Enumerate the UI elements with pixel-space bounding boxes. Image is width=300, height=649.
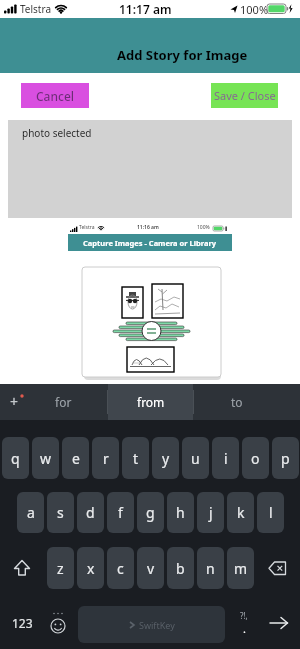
button[interactable] bbox=[2, 547, 42, 589]
button[interactable]: photo selected bbox=[8, 120, 292, 218]
button[interactable]: ?!, bbox=[230, 602, 258, 644]
button[interactable]: k bbox=[227, 492, 254, 533]
staticText: h bbox=[176, 503, 185, 522]
staticText: c bbox=[117, 559, 124, 578]
button[interactable]: 123 bbox=[0, 602, 44, 644]
staticText: from bbox=[137, 394, 165, 410]
staticText: t bbox=[133, 449, 139, 468]
staticText: y bbox=[162, 449, 170, 468]
button[interactable]: j bbox=[197, 492, 224, 533]
staticText: u bbox=[191, 449, 200, 468]
button[interactable]: Save / Close bbox=[211, 83, 278, 108]
staticText: Cancel bbox=[36, 88, 75, 104]
staticText: 11:16 am bbox=[137, 224, 159, 231]
button[interactable]: for bbox=[20, 384, 107, 420]
button[interactable]: c bbox=[107, 547, 134, 589]
staticText: f bbox=[118, 503, 123, 522]
button[interactable]: h bbox=[167, 492, 194, 533]
button[interactable]: s bbox=[47, 492, 74, 533]
staticText: for bbox=[55, 394, 72, 410]
button[interactable] bbox=[44, 602, 72, 644]
staticText: g bbox=[146, 503, 155, 522]
button[interactable]: r bbox=[92, 437, 119, 479]
button[interactable] bbox=[108, 384, 193, 420]
staticText: q bbox=[11, 449, 20, 468]
button[interactable]: f bbox=[107, 492, 134, 533]
button[interactable]: b bbox=[167, 547, 194, 589]
staticText: r bbox=[103, 449, 109, 468]
button[interactable]: SwiftKey bbox=[78, 606, 225, 643]
button[interactable] bbox=[258, 547, 298, 589]
staticText: 100% bbox=[197, 224, 210, 231]
staticText: p bbox=[281, 449, 290, 468]
staticText: photo selected bbox=[22, 126, 92, 140]
staticText: Capture Images - Camera or Library bbox=[83, 238, 217, 248]
staticText: i bbox=[224, 449, 228, 468]
staticText: l bbox=[269, 503, 273, 522]
button[interactable]: d bbox=[77, 492, 104, 533]
button[interactable]: i bbox=[212, 437, 239, 479]
staticText: z bbox=[57, 559, 64, 578]
staticText: j bbox=[209, 503, 213, 522]
staticText: ?!, bbox=[240, 610, 248, 621]
staticText: x bbox=[87, 559, 95, 578]
button[interactable]: from bbox=[108, 384, 193, 420]
button[interactable]: q bbox=[2, 437, 29, 479]
staticText: s bbox=[57, 503, 64, 522]
button[interactable]: m bbox=[227, 547, 254, 589]
staticText: a bbox=[27, 503, 35, 522]
button[interactable]: y bbox=[152, 437, 179, 479]
button[interactable]: x bbox=[77, 547, 104, 589]
staticText: SwiftKey bbox=[139, 619, 175, 631]
staticText: d bbox=[86, 503, 95, 522]
staticText: b bbox=[176, 559, 185, 578]
button[interactable]: o bbox=[242, 437, 269, 479]
staticText: 11:17 am bbox=[119, 1, 172, 17]
button[interactable]: a bbox=[17, 492, 44, 533]
staticText: Telstra bbox=[20, 2, 52, 16]
staticText: w bbox=[40, 449, 52, 468]
staticText: to bbox=[231, 394, 243, 410]
button[interactable]: t bbox=[122, 437, 149, 479]
staticText: Add Story for Image bbox=[117, 46, 248, 64]
staticText: m bbox=[234, 559, 248, 578]
button[interactable]: g bbox=[137, 492, 164, 533]
button[interactable]: Cancel bbox=[21, 83, 89, 108]
staticText: o bbox=[251, 449, 260, 468]
button[interactable]: p bbox=[272, 437, 299, 479]
button[interactable]: n bbox=[197, 547, 224, 589]
button[interactable]: l bbox=[257, 492, 284, 533]
staticText: 100% bbox=[240, 2, 269, 17]
staticText: e bbox=[72, 449, 80, 468]
button[interactable] bbox=[260, 602, 298, 644]
button[interactable]: z bbox=[47, 547, 74, 589]
staticText: n bbox=[206, 559, 215, 578]
button[interactable]: u bbox=[182, 437, 209, 479]
button[interactable]: w bbox=[32, 437, 59, 479]
button[interactable]: v bbox=[137, 547, 164, 589]
staticText: v bbox=[147, 559, 155, 578]
staticText: Telstra bbox=[79, 224, 95, 231]
staticText: . bbox=[243, 621, 246, 636]
staticText: 123 bbox=[12, 615, 33, 631]
staticText: Save / Close bbox=[214, 88, 276, 103]
button[interactable]: + bbox=[10, 392, 19, 411]
staticText: k bbox=[237, 503, 245, 522]
button[interactable]: to bbox=[194, 384, 280, 420]
button[interactable]: e bbox=[62, 437, 89, 479]
